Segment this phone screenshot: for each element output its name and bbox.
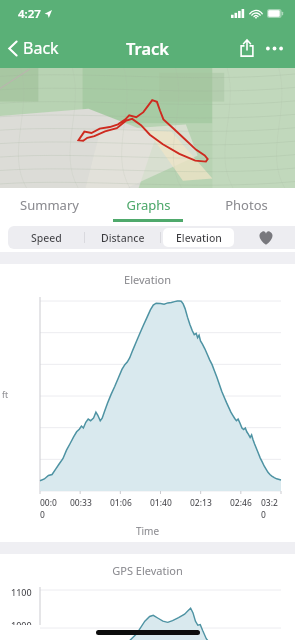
staticText: Back	[23, 37, 59, 59]
button[interactable]: Favorite	[236, 226, 295, 249]
staticText: Graphs	[126, 196, 171, 214]
staticText: Photos	[225, 196, 268, 214]
staticText: Speed	[31, 231, 62, 245]
staticText: Time	[0, 524, 295, 538]
staticText: 03:20	[261, 497, 281, 521]
staticText: 01:06	[110, 497, 132, 509]
staticText: Summary	[20, 196, 79, 214]
staticText: 1100	[11, 586, 32, 598]
staticText: 02:13	[190, 497, 212, 509]
staticText: Distance	[101, 231, 145, 245]
staticText: Track	[126, 37, 170, 59]
staticText: ft	[2, 389, 8, 401]
button[interactable]: Speed	[10, 228, 82, 247]
button[interactable]: Elevation	[163, 228, 234, 247]
button[interactable]: Distance	[87, 228, 158, 247]
staticText: 00:33	[70, 497, 92, 509]
button[interactable]: More options	[260, 38, 289, 59]
button[interactable]: Track map	[0, 68, 295, 188]
staticText: 1000	[11, 619, 32, 625]
button[interactable]: Photos	[197, 188, 295, 222]
button[interactable]: Back	[0, 30, 69, 66]
staticText: 02:46	[230, 497, 252, 509]
staticText: Elevation	[0, 272, 295, 287]
staticText: 4:27	[18, 6, 41, 22]
staticText: 00:00	[40, 497, 61, 521]
staticText: Elevation	[176, 231, 222, 245]
button[interactable]: Summary	[0, 188, 99, 222]
staticText: 01:40	[150, 497, 172, 509]
staticText: GPS Elevation	[0, 563, 295, 578]
button[interactable]: Share	[234, 34, 260, 62]
button[interactable]: Graphs	[99, 188, 197, 222]
